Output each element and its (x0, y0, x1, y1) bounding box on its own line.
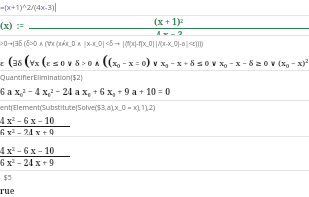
button[interactable]: =(x+1)^2/(4x-3) (0, 0, 309, 15)
staticText: ε (∃δ (∀x (ε ≤ 0 ∨ δ > 0 ∧ ((x0 − x = 0)… (0, 51, 309, 70)
button[interactable]: 6 a x02 − 4 x02 − 24 a x0 + 6 x0 + 9 a +… (0, 85, 309, 99)
staticText: =(x+1)^2/(4x-3) (0, 2, 55, 13)
button[interactable]: 4 x2 − 6 x − 10 (0, 144, 309, 168)
button[interactable]: QuantifierElimination($2) (0, 72, 309, 84)
button[interactable]: ent(Element(Substitute(Solve($3,a),x_0 =… (0, 102, 309, 114)
staticText: 4 x2 − 6 x − 10 (0, 115, 55, 126)
staticText: >0→(∃δ (δ>0 ∧ (∀x (x≠x_0 ∧ |x-x_0|<δ → |… (0, 39, 203, 48)
button[interactable]: ε (∃δ (∀x (ε ≤ 0 ∨ δ > 0 ∧ ((x0 − x = 0)… (0, 50, 309, 70)
staticText: $5 (0, 173, 12, 183)
staticText: QuantifierElimination($2) (0, 73, 83, 83)
staticText: 4 x − 3 (156, 29, 183, 35)
button[interactable]: 4 x2 − 6 x − 10 (0, 115, 309, 135)
staticText: ent(Element(Substitute(Solve($3,a),x_0 =… (0, 103, 156, 113)
staticText: (x) := (0, 20, 25, 32)
staticText: 6 x2 − 24 x + 9 (0, 127, 54, 135)
staticText: (x + 1)2 (154, 16, 184, 28)
button[interactable]: >0→(∃δ (δ>0 ∧ (∀x (x≠x_0 ∧ |x-x_0|<δ → |… (0, 37, 309, 50)
button[interactable]: (x) := (0, 16, 309, 35)
staticText: 6 a x02 − 4 x02 − 24 a x0 + 6 x0 + 9 a +… (0, 86, 171, 98)
button[interactable]: rue (0, 184, 309, 197)
staticText: 6 x2 − 24 x + 9 (0, 157, 54, 168)
button[interactable]: $5 (0, 172, 309, 184)
staticText: 4 x2 − 6 x − 10 (0, 145, 55, 156)
staticText: rue (0, 185, 15, 196)
